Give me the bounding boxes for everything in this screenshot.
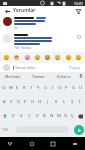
button[interactable]: Ana ekran xyxy=(28,140,36,148)
button[interactable]: Emoji xyxy=(65,54,72,61)
staticText: X xyxy=(20,113,23,119)
button[interactable]: Beğen xyxy=(76,34,82,40)
staticText: H xyxy=(38,99,42,105)
staticText: L xyxy=(63,99,66,105)
button[interactable]: Yorum ekle... xyxy=(13,65,68,70)
button[interactable]: Geri xyxy=(6,140,14,148)
button[interactable]: Ç xyxy=(69,109,76,123)
button[interactable]: Y xyxy=(35,81,42,95)
staticText: Z xyxy=(12,113,15,119)
button[interactable]: W xyxy=(7,81,14,95)
button[interactable]: Gönder xyxy=(74,125,84,135)
staticText: Ü xyxy=(79,85,83,91)
staticText: E xyxy=(16,85,19,91)
staticText: I xyxy=(52,85,54,91)
button[interactable]: Emoji xyxy=(13,54,20,61)
staticText: Merhaba xyxy=(5,74,21,79)
button[interactable]: T xyxy=(28,81,35,95)
button[interactable]: Nokta xyxy=(69,123,74,136)
button[interactable]: X xyxy=(17,109,25,123)
button[interactable]: D xyxy=(15,95,22,109)
button[interactable]: Emoji xyxy=(44,54,51,61)
button[interactable]: Ü xyxy=(77,81,84,95)
button[interactable]: Klavye xyxy=(71,140,79,148)
button[interactable]: S xyxy=(8,95,15,109)
button[interactable]: Emoji xyxy=(3,54,10,61)
button[interactable]: Ğ xyxy=(70,81,77,95)
button[interactable]: Tamam xyxy=(25,72,51,80)
button[interactable]: Virgül xyxy=(10,123,15,136)
button[interactable]: Emoji xyxy=(75,54,82,61)
staticText: V xyxy=(36,113,39,119)
staticText: S xyxy=(10,99,13,105)
button[interactable]: 10s Yanıtla xyxy=(0,32,85,52)
staticText: Ş xyxy=(71,99,74,105)
staticText: Ö xyxy=(64,113,68,119)
staticText: W xyxy=(9,85,13,91)
staticText: P xyxy=(65,85,68,91)
button[interactable]: Emoji xyxy=(24,54,31,61)
staticText: 10s Yanıtla xyxy=(14,46,31,50)
staticText: T xyxy=(30,85,33,91)
staticText: F xyxy=(24,99,27,105)
button[interactable]: Ş xyxy=(68,95,76,109)
button[interactable]: Son uygulamalar xyxy=(49,140,57,148)
staticText: M xyxy=(57,113,61,119)
staticText: J xyxy=(47,99,49,105)
button[interactable]: Sesle yaz xyxy=(77,72,85,80)
button[interactable]: N xyxy=(48,109,55,123)
button[interactable]: P xyxy=(63,81,70,95)
staticText: Ğ xyxy=(72,85,76,91)
button[interactable]: J xyxy=(44,95,52,109)
button[interactable]: İ xyxy=(76,95,84,109)
button[interactable]: Ö xyxy=(62,109,69,123)
staticText: Paylaş xyxy=(69,65,81,70)
button[interactable]: Emoji xyxy=(54,54,61,61)
button[interactable]: O xyxy=(56,81,63,95)
button[interactable]: Paylaş xyxy=(68,65,82,70)
button[interactable]: G xyxy=(29,95,36,109)
staticText: Q xyxy=(2,85,6,91)
staticText: U xyxy=(44,85,48,91)
button[interactable]: E xyxy=(14,81,21,95)
button[interactable]: H xyxy=(36,95,44,109)
staticText: B xyxy=(43,113,46,119)
button[interactable]: 2s xyxy=(0,15,85,32)
button[interactable]: M xyxy=(55,109,62,123)
button[interactable]: Sil xyxy=(76,109,85,123)
staticText: Yorum ekle... xyxy=(15,65,37,70)
button[interactable]: V xyxy=(33,109,41,123)
button[interactable]: L xyxy=(60,95,68,109)
button[interactable]: Z xyxy=(9,109,17,123)
button[interactable]: U xyxy=(42,81,49,95)
button[interactable]: K xyxy=(52,95,60,109)
staticText: D xyxy=(17,99,21,105)
button[interactable]: I xyxy=(49,81,56,95)
button[interactable]: ?123 xyxy=(1,123,10,136)
staticText: İ xyxy=(79,99,81,105)
button[interactable]: F xyxy=(22,95,29,109)
button[interactable]: Kullanıcı xyxy=(51,72,77,80)
staticText: A xyxy=(3,99,6,105)
staticText: . xyxy=(71,127,73,132)
button[interactable]: Emoji xyxy=(34,54,41,61)
button[interactable]: R xyxy=(21,81,28,95)
staticText: C xyxy=(28,113,31,119)
staticText: 2s xyxy=(14,26,18,30)
staticText: , xyxy=(12,127,14,132)
staticText: Kullanıcı xyxy=(57,74,72,79)
button[interactable]: Filtrele xyxy=(74,7,82,15)
button[interactable]: A xyxy=(1,95,8,109)
button[interactable]: B xyxy=(41,109,48,123)
button[interactable]: Q xyxy=(1,81,7,95)
button[interactable]: Shift xyxy=(0,109,9,123)
staticText: Yorumlar xyxy=(13,7,36,14)
button[interactable]: Merhaba xyxy=(0,72,25,80)
button[interactable]: Geri xyxy=(3,7,11,15)
staticText: ?123 xyxy=(2,128,9,132)
staticText: Tamam xyxy=(32,74,45,79)
button[interactable]: C xyxy=(25,109,33,123)
staticText: R xyxy=(23,85,26,91)
staticText: K xyxy=(55,99,58,105)
